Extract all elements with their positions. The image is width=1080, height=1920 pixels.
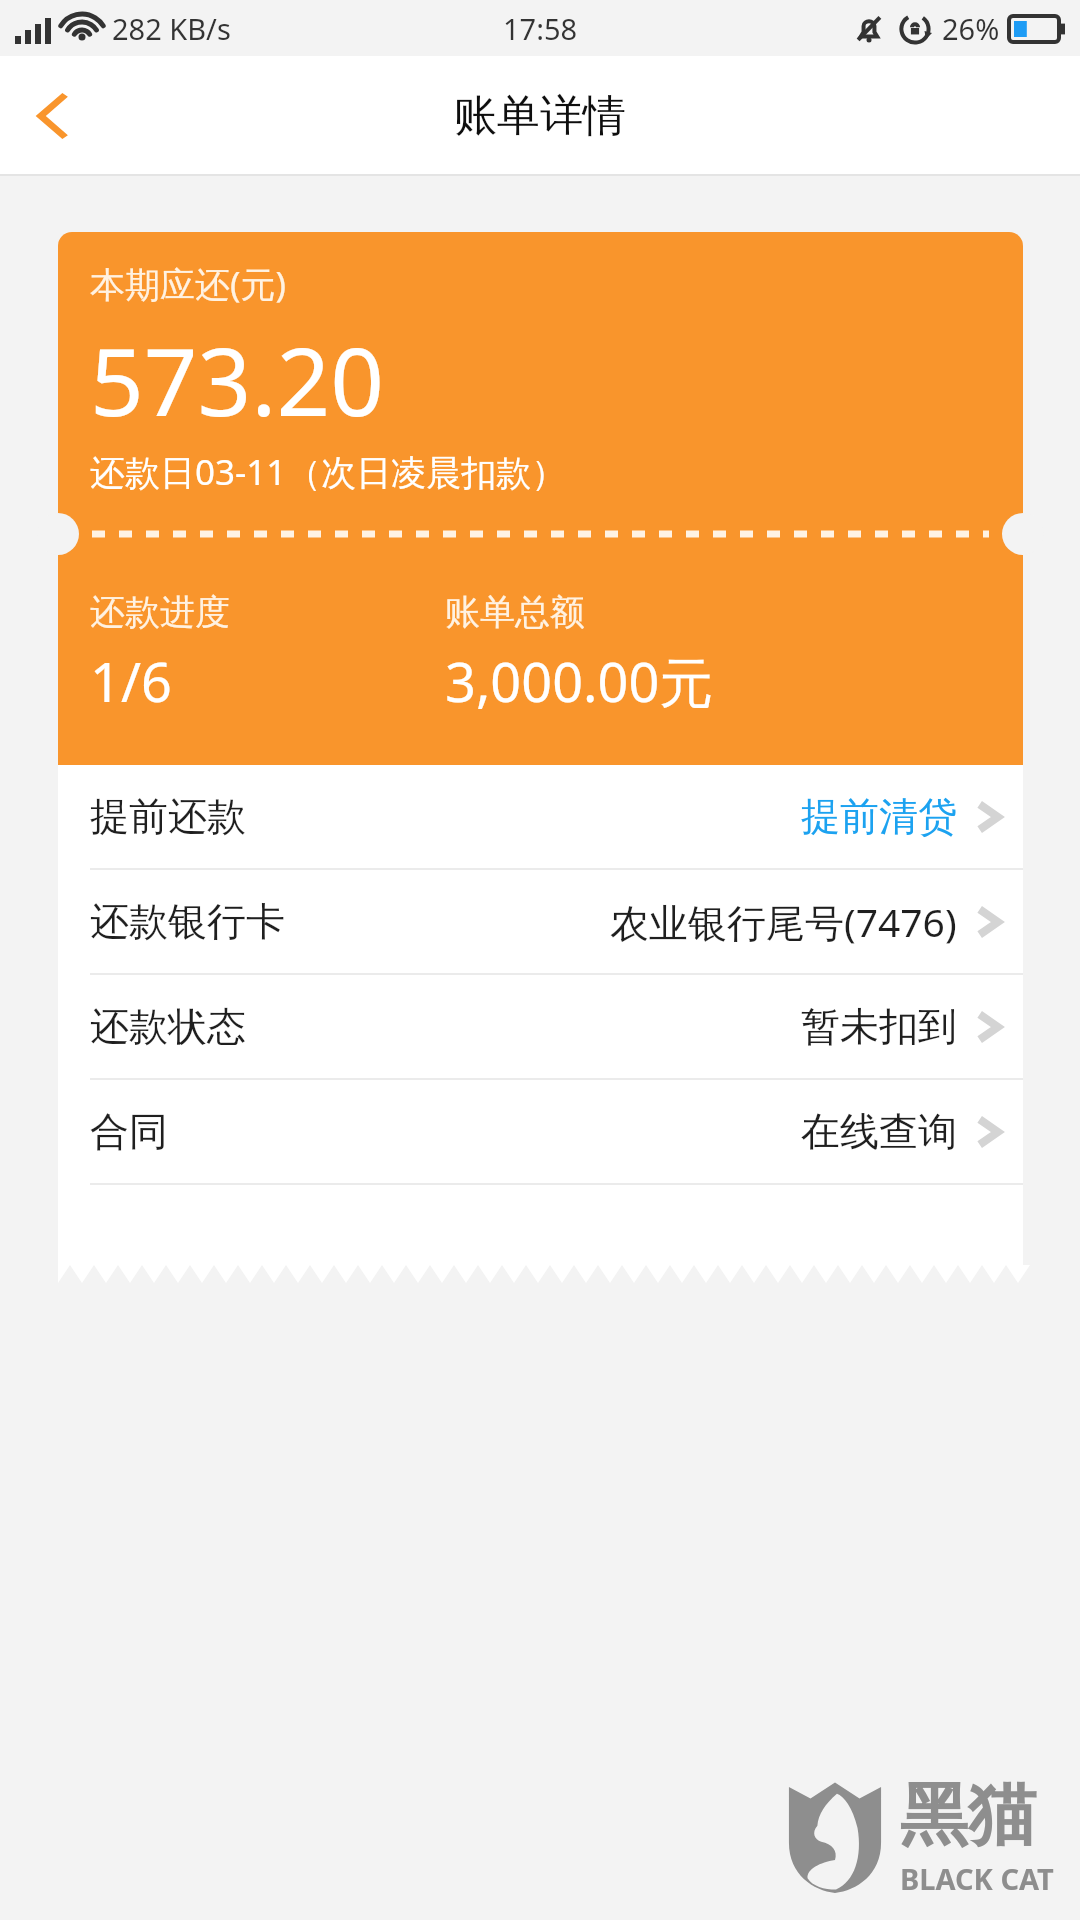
staticText: 还款状态 [90,1002,246,1051]
button[interactable]: 合同 [58,1080,1023,1183]
staticText: 还款进度 [90,590,230,634]
staticText: 3,000.00元 [445,644,714,718]
staticText: BLACK CAT [900,1859,1054,1898]
staticText: 合同 [90,1107,168,1156]
staticText: 573.20 [90,316,385,444]
staticText: 本期应还(元) [90,260,287,308]
staticText: 在线查询 [801,1107,957,1156]
staticText: 1/6 [90,644,172,718]
button[interactable]: Back [10,71,100,161]
staticText: 暂未扣到 [801,1002,957,1051]
staticText: 账单详情 [454,89,626,143]
staticText: 还款银行卡 [90,897,285,946]
staticText: 还款日03-11（次日凌晨扣款） [90,448,567,494]
staticText: 账单总额 [445,590,585,634]
staticText: 17:58 [503,9,578,48]
button[interactable]: 还款状态 [58,975,1023,1078]
staticText: 提前还款 [90,792,246,841]
staticText: 黑猫 [900,1773,1036,1859]
staticText: 282 KB/s [112,9,231,48]
button[interactable]: 还款银行卡 [58,870,1023,973]
staticText: 26% [942,9,1000,48]
staticText: 提前清贷 [801,792,957,841]
staticText: 农业银行尾号(7476) [610,895,957,948]
button[interactable]: 提前还款 [58,765,1023,868]
